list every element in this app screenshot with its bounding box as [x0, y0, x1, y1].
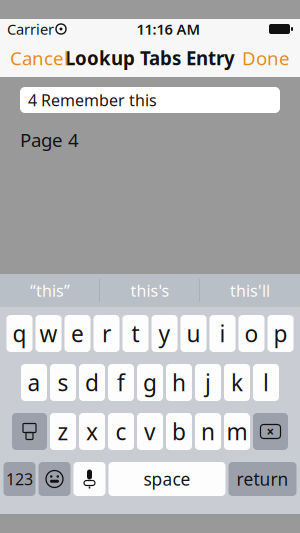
button[interactable]: l — [253, 364, 279, 401]
staticText: d — [85, 367, 99, 397]
staticText: space — [143, 467, 190, 490]
staticText: y — [158, 318, 170, 348]
staticText: w — [39, 318, 57, 348]
button[interactable]: t — [122, 315, 148, 352]
staticText: q — [12, 318, 26, 348]
button[interactable]: e — [64, 315, 90, 352]
button[interactable]: a — [21, 364, 47, 401]
button[interactable]: j — [195, 364, 221, 401]
staticText: l — [263, 367, 269, 397]
button[interactable]: this's — [100, 274, 200, 307]
staticText: return — [236, 467, 288, 490]
staticText: Done — [242, 46, 290, 70]
button[interactable]: m — [224, 413, 250, 450]
button[interactable]: h — [166, 364, 192, 401]
staticText: x — [86, 416, 98, 446]
button[interactable]: Done — [232, 39, 300, 77]
staticText: p — [273, 318, 287, 348]
button[interactable]: 123 — [3, 462, 35, 496]
staticText: f — [117, 367, 125, 397]
button[interactable]: i — [209, 315, 235, 352]
button[interactable]: g — [137, 364, 163, 401]
button[interactable]: w — [35, 315, 61, 352]
staticText: v — [144, 416, 156, 446]
button[interactable]: u — [180, 315, 206, 352]
staticText: j — [205, 367, 211, 397]
button[interactable]: s — [50, 364, 76, 401]
button[interactable]: n — [195, 413, 221, 450]
staticText: Page 4 — [20, 127, 79, 152]
button[interactable]: f — [108, 364, 134, 401]
staticText: k — [231, 367, 243, 397]
staticText: h — [172, 367, 186, 397]
staticText: Cancel — [10, 46, 69, 70]
staticText: u — [186, 318, 200, 348]
staticText: t — [131, 318, 139, 348]
staticText: × — [266, 423, 274, 440]
button[interactable]: v — [137, 413, 163, 450]
button[interactable]: q — [6, 315, 32, 352]
button[interactable]: return — [228, 462, 296, 496]
button[interactable]: “this” — [0, 274, 100, 307]
button[interactable]: Dictate — [73, 462, 105, 496]
staticText: this's — [130, 280, 169, 301]
button[interactable]: Shift — [12, 413, 47, 450]
button[interactable]: x — [79, 413, 105, 450]
staticText: g — [143, 367, 157, 397]
staticText: e — [71, 318, 84, 348]
button[interactable]: p — [267, 315, 293, 352]
staticText: this'll — [230, 280, 270, 301]
staticText: b — [172, 416, 186, 446]
button[interactable]: 4 Remember this — [20, 87, 280, 113]
button[interactable]: b — [166, 413, 192, 450]
button[interactable]: Cancel — [0, 39, 79, 77]
staticText: n — [201, 416, 215, 446]
staticText: 4 Remember this — [28, 89, 157, 111]
button[interactable]: d — [79, 364, 105, 401]
staticText: c — [115, 416, 126, 446]
button[interactable]: y — [151, 315, 177, 352]
button[interactable]: Delete — [253, 413, 288, 450]
button[interactable]: Emoji — [38, 462, 70, 496]
staticText: s — [57, 367, 68, 397]
staticText: i — [219, 318, 225, 348]
staticText: “this” — [30, 280, 70, 301]
button[interactable]: this'll — [200, 274, 300, 307]
staticText: z — [57, 416, 68, 446]
button[interactable]: k — [224, 364, 250, 401]
staticText: a — [27, 367, 40, 397]
button[interactable]: z — [50, 413, 76, 450]
staticText: 11:16 AM — [136, 19, 200, 39]
button[interactable]: space — [108, 462, 225, 496]
staticText: m — [226, 416, 247, 446]
button[interactable]: o — [238, 315, 264, 352]
staticText: r — [102, 318, 111, 348]
staticText: 123 — [6, 468, 33, 490]
staticText: o — [244, 318, 258, 348]
button[interactable]: r — [93, 315, 119, 352]
staticText: Lookup Tabs Entry — [65, 46, 235, 70]
staticText: Carrier — [7, 19, 54, 39]
button[interactable]: c — [108, 413, 134, 450]
